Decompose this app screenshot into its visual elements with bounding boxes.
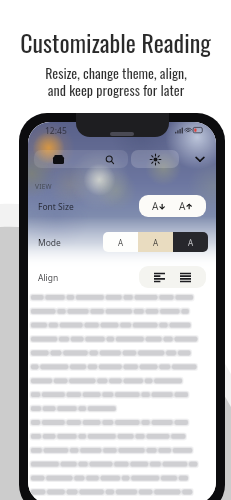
button[interactable]: A [139,195,206,217]
staticText: Align [38,272,59,284]
staticText: Font Size [38,201,74,213]
button[interactable]: A [138,232,173,252]
other: Search [105,155,115,165]
button[interactable]: Align left [139,266,206,288]
staticText: A [179,199,186,213]
button[interactable]: A [103,232,138,252]
staticText: Customizable Reading [20,24,211,60]
button[interactable]: Brightness [131,150,179,168]
staticText: 12:45 [45,125,67,137]
staticText: A [153,237,159,248]
staticText: A [188,237,194,248]
staticText: A [118,237,124,248]
other: Library [53,155,64,164]
staticText: A [152,199,159,213]
other: Align left [154,272,165,283]
staticText: Mode [38,237,61,249]
button[interactable]: Library [34,150,128,168]
staticText: Resize, change theme, align, and keep pr… [45,62,187,101]
staticText: VIEW [35,182,52,191]
other: Justify [180,272,191,283]
button[interactable]: A [173,232,208,252]
button[interactable]: Collapse panel [190,149,209,168]
